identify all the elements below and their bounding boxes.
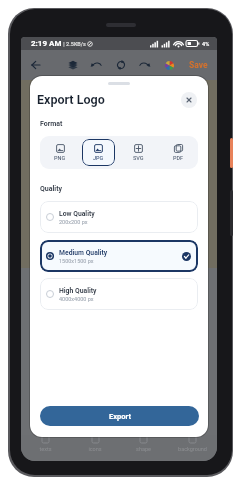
button[interactable]: Back [29,58,43,72]
button[interactable]: Colors [162,58,176,72]
staticText: Export Logo [37,92,105,107]
button[interactable]: PNG [43,139,76,166]
staticText: Format [40,120,63,128]
button[interactable]: texts [21,435,70,461]
staticText: SVG [133,155,144,161]
staticText: | 2.5KB/s [62,41,86,47]
button[interactable]: Redo [137,58,151,72]
staticText: background [178,446,207,452]
button[interactable]: JPG [82,139,115,166]
button[interactable]: Save [189,60,208,70]
staticText: 2:19 AM [31,39,62,48]
staticText: Low Quality [59,210,95,218]
button[interactable]: background [168,435,217,461]
button[interactable]: SVG [121,139,155,166]
staticText: 4000x4000 px [59,296,94,302]
button[interactable]: PDF [161,139,195,166]
staticText: 1500x1500 px [59,258,94,264]
button[interactable]: Export [40,406,199,426]
button[interactable]: Reset [114,58,128,72]
staticText: Save [189,60,208,70]
staticText: JPG [93,155,104,161]
staticText: Export [109,412,131,421]
button[interactable]: Low Quality [40,201,198,233]
staticText: High Quality [59,287,97,295]
button[interactable]: Layers [66,58,80,72]
staticText: icons [88,446,102,452]
button[interactable]: Close [181,92,197,108]
staticText: 200x200 px [59,219,88,225]
staticText: Quality [40,185,63,193]
staticText: texts [39,446,52,452]
button[interactable]: Medium Quality [40,240,198,272]
staticText: PNG [54,155,66,161]
button[interactable]: icons [70,435,119,461]
staticText: 4% [202,41,210,47]
staticText: PDF [173,155,184,161]
staticText: Medium Quality [59,249,108,257]
button[interactable]: High Quality [40,278,198,310]
button[interactable]: Undo [90,58,104,72]
button[interactable]: shape [119,435,168,461]
staticText: shape [136,446,151,452]
